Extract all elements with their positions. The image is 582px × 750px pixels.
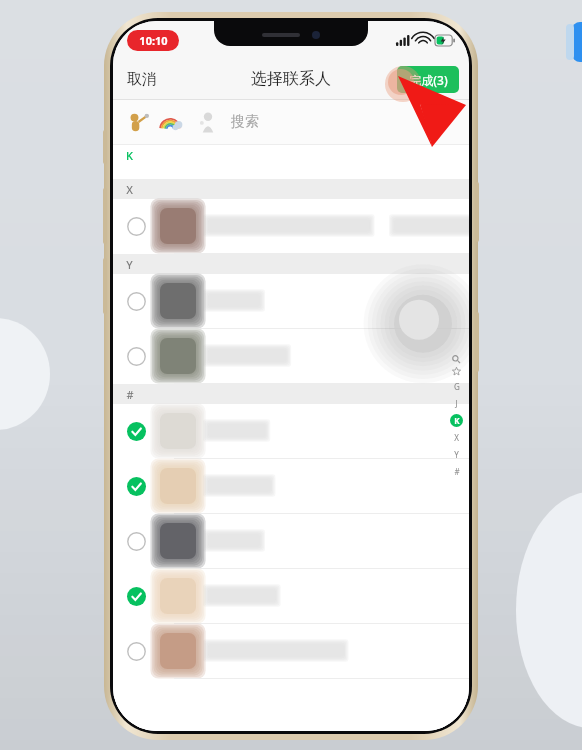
button[interactable]: 取消 xyxy=(113,64,171,95)
button[interactable] xyxy=(113,199,469,253)
staticText: J xyxy=(455,398,458,409)
staticText: # xyxy=(126,387,134,402)
staticText: K xyxy=(454,415,460,426)
button[interactable]: Sticker xyxy=(197,111,219,133)
staticText: K xyxy=(126,148,133,163)
staticText: 选择联系人 xyxy=(251,69,331,89)
button[interactable]: 完成(3) xyxy=(397,66,459,93)
staticText: # xyxy=(454,466,460,477)
button[interactable]: Sticker xyxy=(161,111,183,133)
button[interactable] xyxy=(113,274,469,328)
staticText: 取消 xyxy=(127,70,157,89)
staticText: G xyxy=(454,381,460,392)
button[interactable]: Sticker xyxy=(127,111,149,133)
staticText: 完成(3) xyxy=(409,72,448,88)
staticText: Y xyxy=(454,449,459,460)
staticText: 搜索 xyxy=(231,113,259,131)
button[interactable] xyxy=(113,514,469,568)
staticText: X xyxy=(454,432,459,443)
button[interactable] xyxy=(113,404,469,458)
staticText: X xyxy=(126,182,133,197)
button[interactable] xyxy=(113,624,469,678)
button[interactable] xyxy=(113,569,469,623)
button[interactable] xyxy=(113,329,469,383)
button[interactable] xyxy=(113,459,469,513)
staticText: Y xyxy=(126,257,133,272)
button[interactable]: Alphabet index xyxy=(448,355,464,478)
staticText: 10:10 xyxy=(139,33,168,48)
